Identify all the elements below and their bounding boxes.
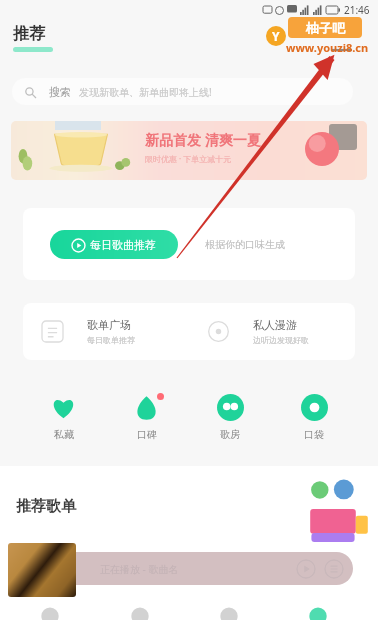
staticText: www.youzi8.cn — [286, 40, 369, 55]
staticText: 口袋 — [304, 428, 324, 441]
staticText: 口碑 — [137, 428, 157, 441]
staticText: 边听边发现好歌 — [253, 335, 309, 345]
button[interactable]: Community — [184, 606, 273, 620]
staticText: Y — [272, 28, 280, 44]
staticText: 新品首发 清爽一夏 — [145, 130, 261, 149]
staticText: 私人漫游 — [253, 318, 297, 332]
button[interactable]: 搜索 — [12, 78, 353, 105]
staticText: 搜索 — [49, 85, 71, 99]
staticText: 歌房 — [220, 428, 240, 441]
button[interactable]: Podcasts — [95, 606, 184, 620]
button[interactable]: Now playing artwork — [8, 543, 76, 597]
staticText: 正在播放 - 歌曲名 — [100, 562, 179, 576]
staticText: 21:46 — [344, 3, 370, 17]
staticText: 限时优惠 · 下单立减十元 — [145, 153, 232, 164]
button[interactable]: 私藏 — [22, 394, 105, 441]
button[interactable]: 口碑 — [105, 394, 188, 441]
button[interactable]: 正在播放 - 歌曲名 — [52, 552, 353, 585]
staticText: 每日歌曲推荐 — [90, 238, 156, 252]
button[interactable]: 口袋 — [272, 394, 356, 441]
staticText: 每日歌单推荐 — [87, 335, 135, 345]
button[interactable]: Me — [273, 606, 362, 620]
button[interactable]: 私人漫游 — [189, 318, 355, 345]
staticText: 柚子吧 — [306, 20, 345, 36]
staticText: 发现新歌单、新单曲即将上线! — [79, 85, 212, 99]
button[interactable]: 每日歌曲推荐 — [23, 208, 355, 280]
button[interactable]: 新品首发 清爽一夏 — [11, 121, 367, 180]
button[interactable]: 歌单广场 — [23, 318, 189, 345]
staticText: 推荐 — [13, 24, 45, 44]
button[interactable]: Home — [5, 606, 95, 620]
staticText: 歌单广场 — [87, 318, 131, 332]
staticText: 私藏 — [54, 428, 74, 441]
button[interactable]: Playlists — [309, 481, 369, 537]
button[interactable]: 歌房 — [188, 394, 272, 441]
staticText: 推荐歌单 — [16, 497, 76, 516]
staticText: 根据你的口味生成 — [205, 238, 285, 251]
